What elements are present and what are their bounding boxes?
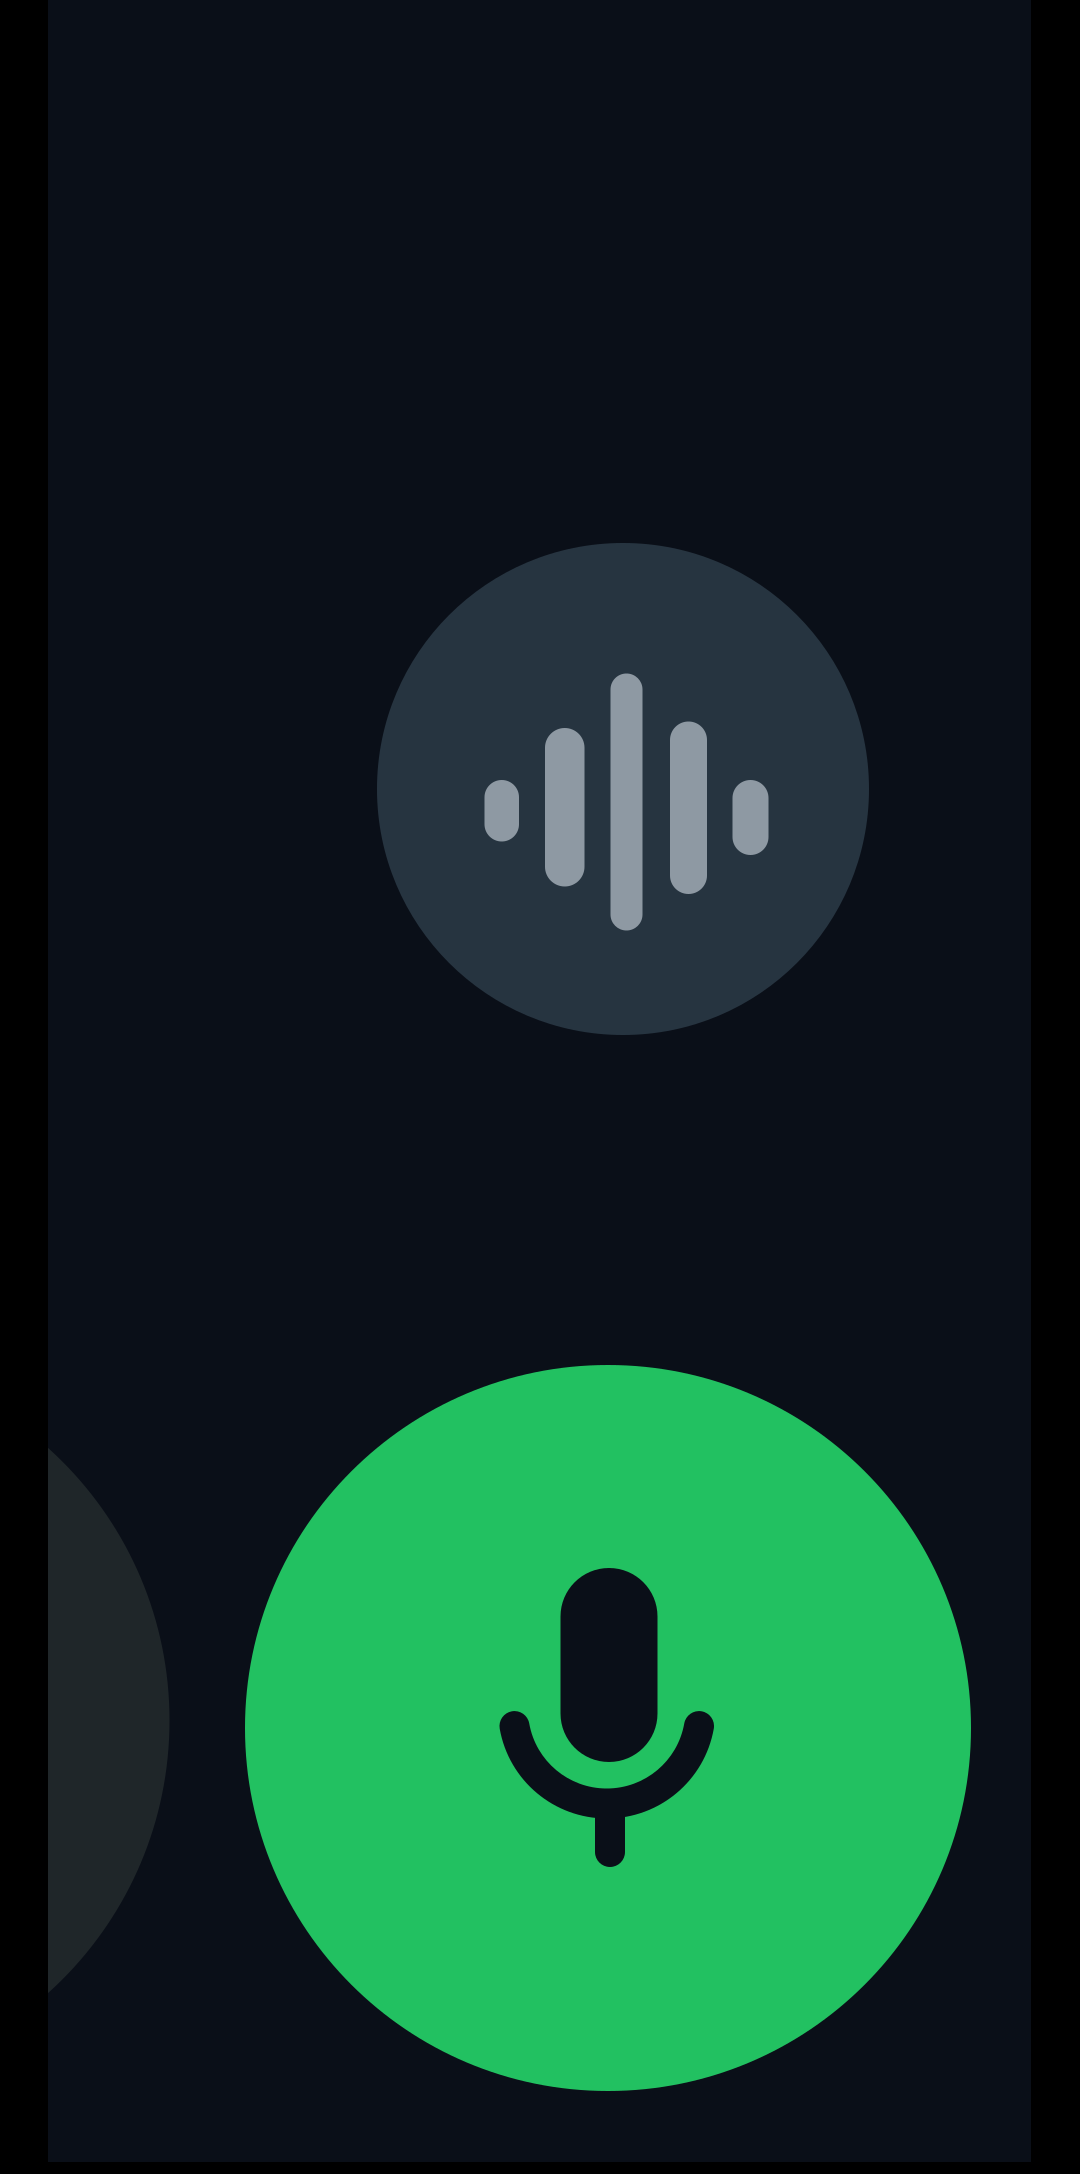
button[interactable]: Play recording <box>377 543 869 1035</box>
button[interactable]: Previous recording <box>0 1354 169 2087</box>
button[interactable]: Record <box>245 1365 971 2091</box>
